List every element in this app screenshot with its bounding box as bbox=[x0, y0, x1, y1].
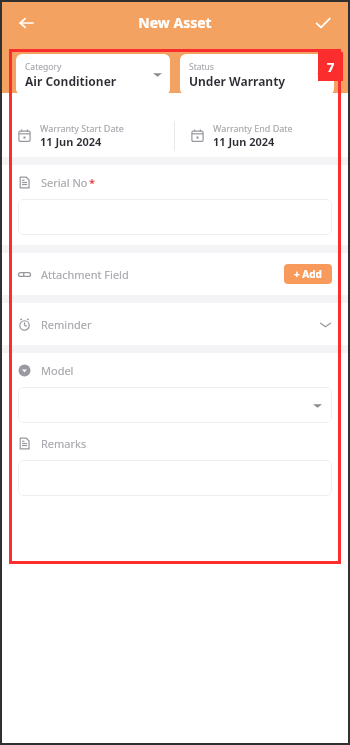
staticText: Serial No bbox=[41, 175, 88, 190]
staticText: Remarks bbox=[41, 436, 87, 451]
staticText: * bbox=[89, 175, 95, 190]
button[interactable] bbox=[18, 387, 332, 423]
staticText: Warranty Start Date bbox=[40, 122, 124, 134]
staticText: Status bbox=[189, 61, 214, 73]
button[interactable] bbox=[18, 199, 332, 235]
button[interactable]: Save bbox=[307, 7, 339, 39]
staticText: 11 Jun 2024 bbox=[213, 134, 275, 149]
staticText: Reminder bbox=[41, 317, 92, 332]
button[interactable]: Reminder bbox=[2, 303, 348, 345]
staticText: 11 Jun 2024 bbox=[40, 134, 102, 149]
button[interactable]: Status bbox=[180, 54, 334, 95]
button[interactable]: Warranty Start Date bbox=[2, 114, 174, 157]
button[interactable] bbox=[18, 460, 332, 496]
button[interactable]: Back bbox=[10, 7, 42, 39]
button[interactable]: Category bbox=[16, 54, 170, 95]
staticText: + Add bbox=[294, 267, 322, 281]
staticText: 7 bbox=[327, 58, 335, 76]
staticText: Category bbox=[25, 61, 62, 73]
staticText: Warranty End Date bbox=[213, 122, 293, 134]
button[interactable]: Warranty End Date bbox=[175, 114, 348, 157]
staticText: Model bbox=[41, 363, 74, 378]
staticText: Attachment Field bbox=[41, 267, 129, 282]
staticText: Air Conditioner bbox=[25, 73, 117, 89]
button[interactable]: + Add bbox=[284, 264, 332, 284]
staticText: Under Warranty bbox=[189, 73, 286, 89]
staticText: New Asset bbox=[138, 13, 212, 32]
